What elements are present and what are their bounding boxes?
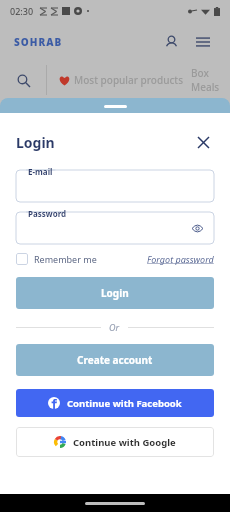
staticText: Continue with Google	[73, 436, 176, 449]
staticText: Remember me	[34, 253, 97, 265]
button[interactable]: Login	[16, 277, 214, 309]
staticText: Forgot password	[147, 253, 214, 265]
button[interactable]: Continue with Facebook	[16, 389, 214, 417]
button[interactable]: Forgot password	[147, 253, 214, 265]
button[interactable]: Remember me	[16, 253, 97, 265]
staticText: Create account	[77, 353, 153, 367]
button[interactable]: Close	[192, 131, 214, 153]
staticText: E-mail	[28, 166, 53, 177]
staticText: SOHRAB	[14, 35, 63, 49]
staticText: 02:30	[10, 5, 34, 17]
button[interactable]: Search	[0, 62, 46, 98]
staticText: Password	[28, 208, 67, 219]
button[interactable]: Account	[158, 29, 184, 55]
staticText: Or	[109, 321, 120, 333]
staticText: Continue with Facebook	[67, 397, 182, 410]
staticText: Box Meals	[191, 66, 230, 94]
button[interactable]: Show password	[188, 219, 206, 237]
button[interactable]: Create account	[16, 344, 214, 376]
staticText: Login	[101, 286, 129, 300]
button[interactable]: Continue with Google	[16, 427, 214, 457]
button[interactable]: Menu	[190, 29, 216, 55]
staticText: Most popular products	[74, 73, 184, 87]
staticText: Login	[16, 133, 55, 152]
